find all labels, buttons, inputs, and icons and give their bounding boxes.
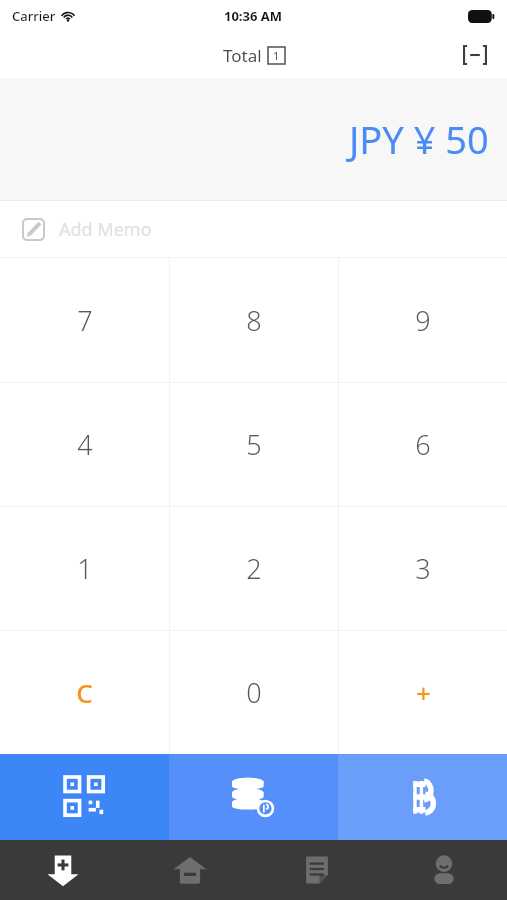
button[interactable]: 7 [0, 258, 169, 382]
staticText: 2 [246, 550, 262, 587]
staticText: 6 [415, 426, 431, 463]
staticText: 4 [77, 426, 93, 463]
staticText: Total [223, 44, 262, 67]
button[interactable]: 9 [339, 258, 507, 382]
button[interactable]: 0 [170, 631, 338, 754]
staticText: JPY ¥ 50 [349, 113, 489, 165]
button[interactable]: Profile [380, 840, 507, 900]
staticText: 3 [415, 550, 431, 587]
staticText: C [76, 675, 93, 710]
button[interactable]: 2 [170, 507, 338, 630]
button[interactable]: C [0, 631, 169, 754]
button[interactable]: Notes [253, 840, 380, 900]
button[interactable]: Total [223, 44, 285, 67]
staticText: 1 [77, 550, 93, 587]
button[interactable]: 4 [0, 383, 169, 506]
staticText: 1 [273, 48, 280, 63]
staticText: 9 [415, 302, 431, 339]
button[interactable]: 6 [339, 383, 507, 506]
staticText: 0 [246, 674, 262, 711]
button[interactable]: Add Memo [0, 201, 507, 257]
staticText: 10:36 AM [224, 7, 283, 25]
staticText: + [416, 675, 431, 710]
button[interactable]: Expense [126, 840, 253, 900]
staticText: Carrier [12, 7, 56, 25]
staticText: Add Memo [59, 217, 152, 242]
button[interactable]: 3 [339, 507, 507, 630]
button[interactable]: Collapse [457, 37, 493, 73]
button[interactable]: 5 [170, 383, 338, 506]
button[interactable]: 1 [0, 507, 169, 630]
staticText: 5 [246, 426, 262, 463]
button[interactable]: Points [169, 754, 338, 840]
button[interactable]: Scan QR code [0, 754, 169, 840]
staticText: 8 [246, 302, 262, 339]
button[interactable]: + [339, 631, 507, 754]
button[interactable]: Income [0, 840, 126, 900]
button[interactable]: Bitcoin [338, 754, 507, 840]
staticText: 7 [77, 302, 93, 339]
button[interactable]: 8 [170, 258, 338, 382]
